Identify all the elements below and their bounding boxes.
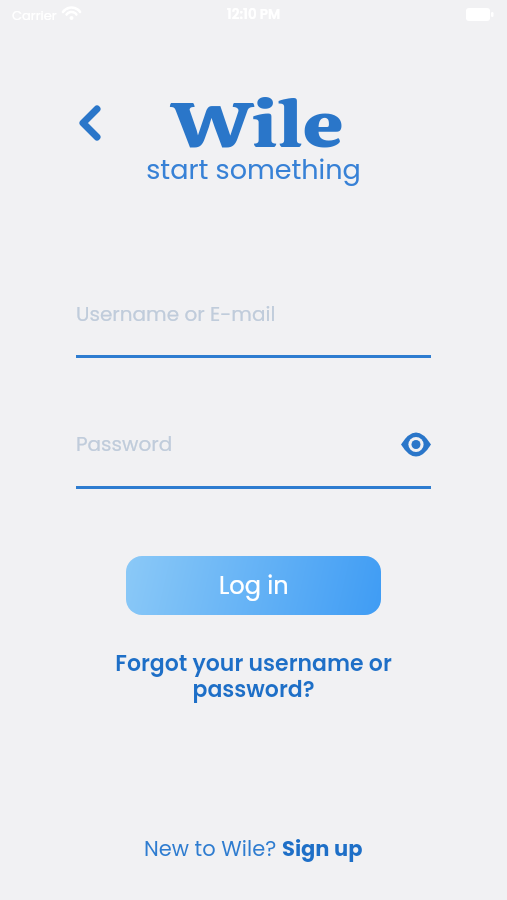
staticText: 12:10 PM [0, 5, 507, 24]
staticText: Wile [0, 84, 507, 166]
button[interactable]: Log in [126, 556, 381, 615]
staticText: New to Wile? [144, 834, 282, 863]
button[interactable] [70, 99, 110, 147]
staticText: Carrier [12, 6, 57, 24]
staticText: Password [76, 430, 173, 458]
button[interactable]: Sign up [282, 834, 363, 863]
button[interactable]: Username or E-mail [76, 292, 431, 358]
button[interactable]: Password [76, 423, 431, 489]
staticText: Log in [219, 569, 289, 603]
staticText: Username or E-mail [76, 300, 276, 328]
staticText: start something [0, 151, 507, 189]
button[interactable] [398, 428, 434, 460]
button[interactable]: Forgot your username or password? [0, 648, 507, 705]
